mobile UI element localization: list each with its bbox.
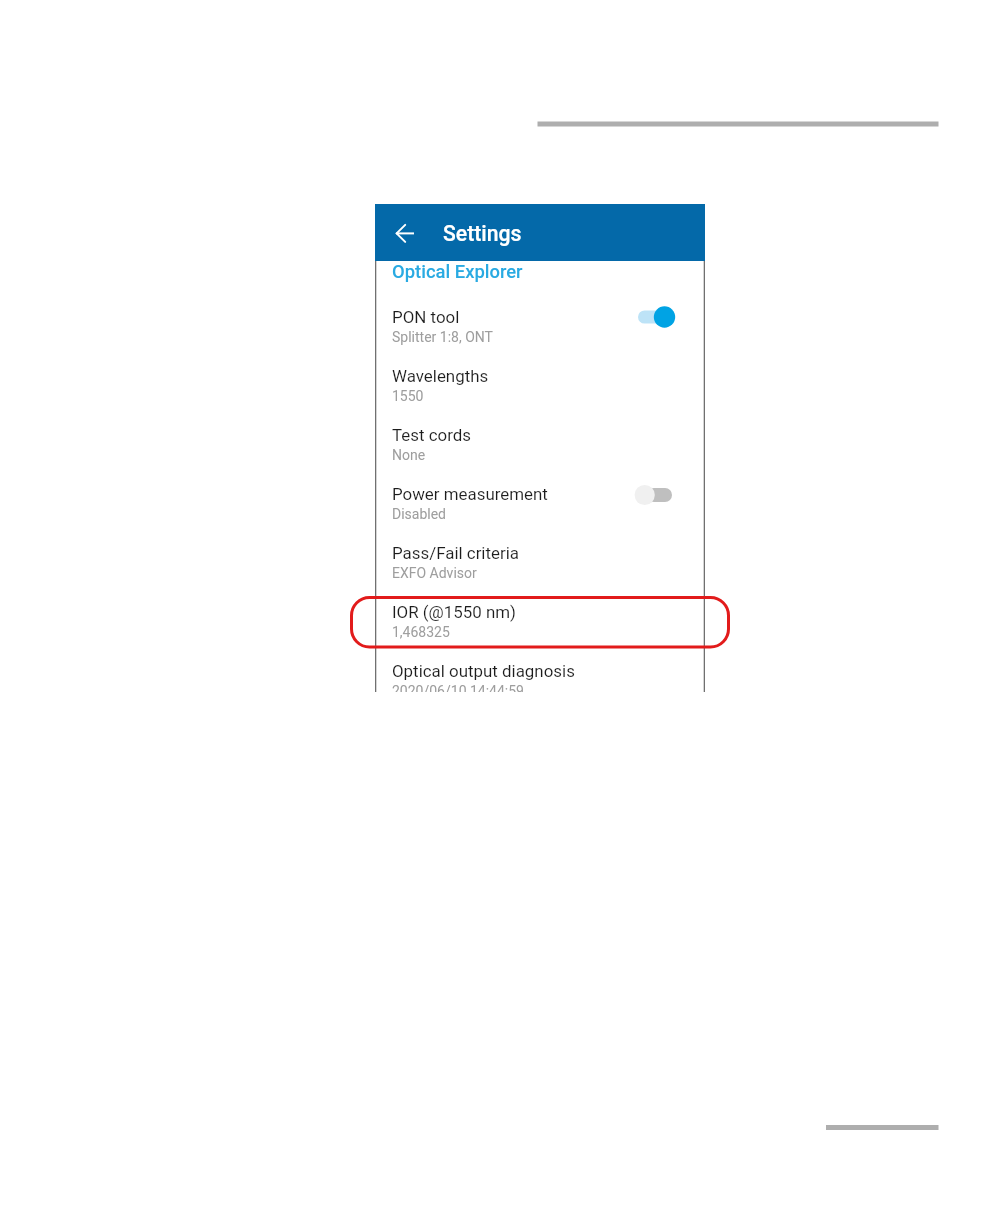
staticText: Settings [443,221,522,246]
staticText: Power measurement [392,484,548,504]
button[interactable]: Test cords [376,414,704,467]
staticText: Optical Explorer [392,261,523,283]
staticText: Optical output diagnosis [392,661,575,681]
button[interactable]: Power measurement, disabled [632,480,680,510]
button[interactable]: Back [386,214,424,252]
staticText: 1550 [392,388,424,404]
staticText: Wavelengths [392,366,489,386]
staticText: Disabled [392,506,447,522]
staticText: Pass/Fail criteria [392,543,519,563]
button[interactable]: IOR (@1550 nm) [376,591,704,644]
staticText: IOR (@1550 nm) [392,602,516,622]
staticText: 2020/06/10 14:44:59 [392,683,524,692]
staticText: 1,468325 [392,624,450,640]
button[interactable]: PON tool [376,296,704,349]
staticText: PON tool [392,307,460,327]
button[interactable]: Optical output diagnosis [376,650,704,692]
button[interactable]: Pass/Fail criteria [376,532,704,585]
button[interactable]: Power measurement [376,473,704,526]
staticText: Splitter 1:8, ONT [392,329,493,345]
button[interactable]: PON tool, enabled [632,302,680,332]
staticText: EXFO Advisor [392,565,477,581]
button[interactable]: Wavelengths [376,355,704,408]
staticText: Test cords [392,425,471,445]
staticText: None [392,447,426,463]
